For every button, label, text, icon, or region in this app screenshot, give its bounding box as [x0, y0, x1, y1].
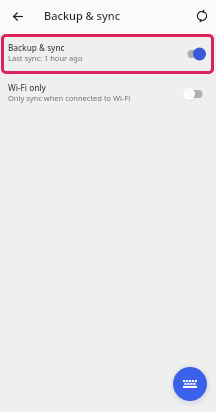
button[interactable]: Backup & sync	[1, 34, 214, 74]
staticText: Wi-Fi only	[8, 82, 46, 93]
staticText: Last sync: 1 hour ago	[8, 53, 83, 63]
button[interactable]: Off	[182, 87, 209, 101]
staticText: Backup & sync	[44, 8, 121, 23]
button[interactable]: On	[181, 47, 208, 61]
button[interactable]: Sync now	[182, 0, 216, 34]
staticText: Backup & sync	[8, 42, 65, 53]
button[interactable]: Wi-Fi only	[0, 74, 216, 114]
staticText: Only sync when connected to Wi-Fi	[8, 93, 131, 103]
button[interactable]: Back	[0, 0, 34, 34]
button[interactable]: Keyboard	[173, 367, 207, 401]
